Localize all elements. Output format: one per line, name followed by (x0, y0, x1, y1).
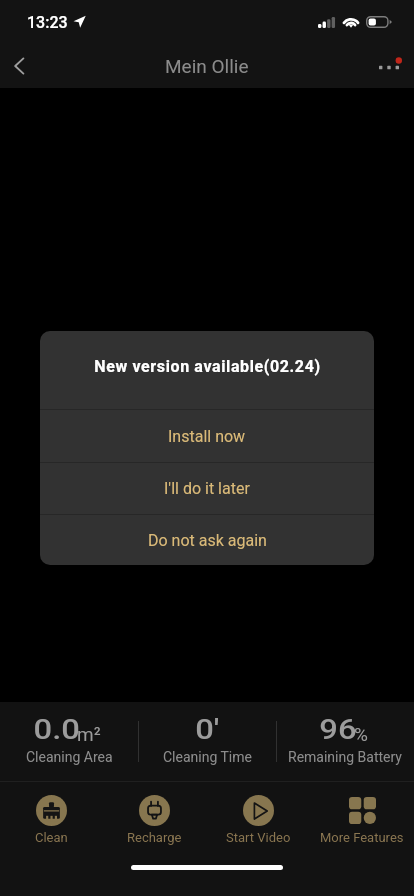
button[interactable]: Do not ask again (40, 515, 374, 565)
button[interactable]: Start Video (206, 782, 310, 845)
staticText: Remaining Battery (288, 749, 402, 765)
staticText: Clean (35, 830, 68, 845)
staticText: 13:23 (27, 13, 68, 32)
staticText: m² (77, 723, 101, 745)
staticText: 0' (195, 713, 220, 746)
button[interactable]: Back (0, 46, 40, 86)
staticText: Mein Ollie (165, 55, 249, 77)
staticText: Install now (168, 427, 246, 446)
button[interactable]: Recharge (103, 782, 206, 845)
staticText: Start Video (226, 830, 291, 845)
staticText: Cleaning Time (163, 749, 252, 765)
staticText: % (354, 723, 368, 745)
staticText: New version available(02.24) (94, 357, 321, 376)
staticText: Recharge (127, 830, 182, 845)
staticText: Do not ask again (148, 531, 267, 550)
button[interactable]: More options (374, 46, 414, 86)
staticText: I'll do it later (164, 479, 250, 498)
staticText: More Features (320, 830, 404, 845)
button[interactable]: More Features (310, 782, 414, 845)
button[interactable]: Clean (0, 782, 103, 845)
staticText: 96 (319, 713, 357, 746)
button[interactable]: Install now (40, 410, 374, 462)
button[interactable]: I'll do it later (40, 463, 374, 514)
staticText: 0.0 (34, 713, 80, 746)
staticText: Cleaning Area (26, 749, 113, 765)
